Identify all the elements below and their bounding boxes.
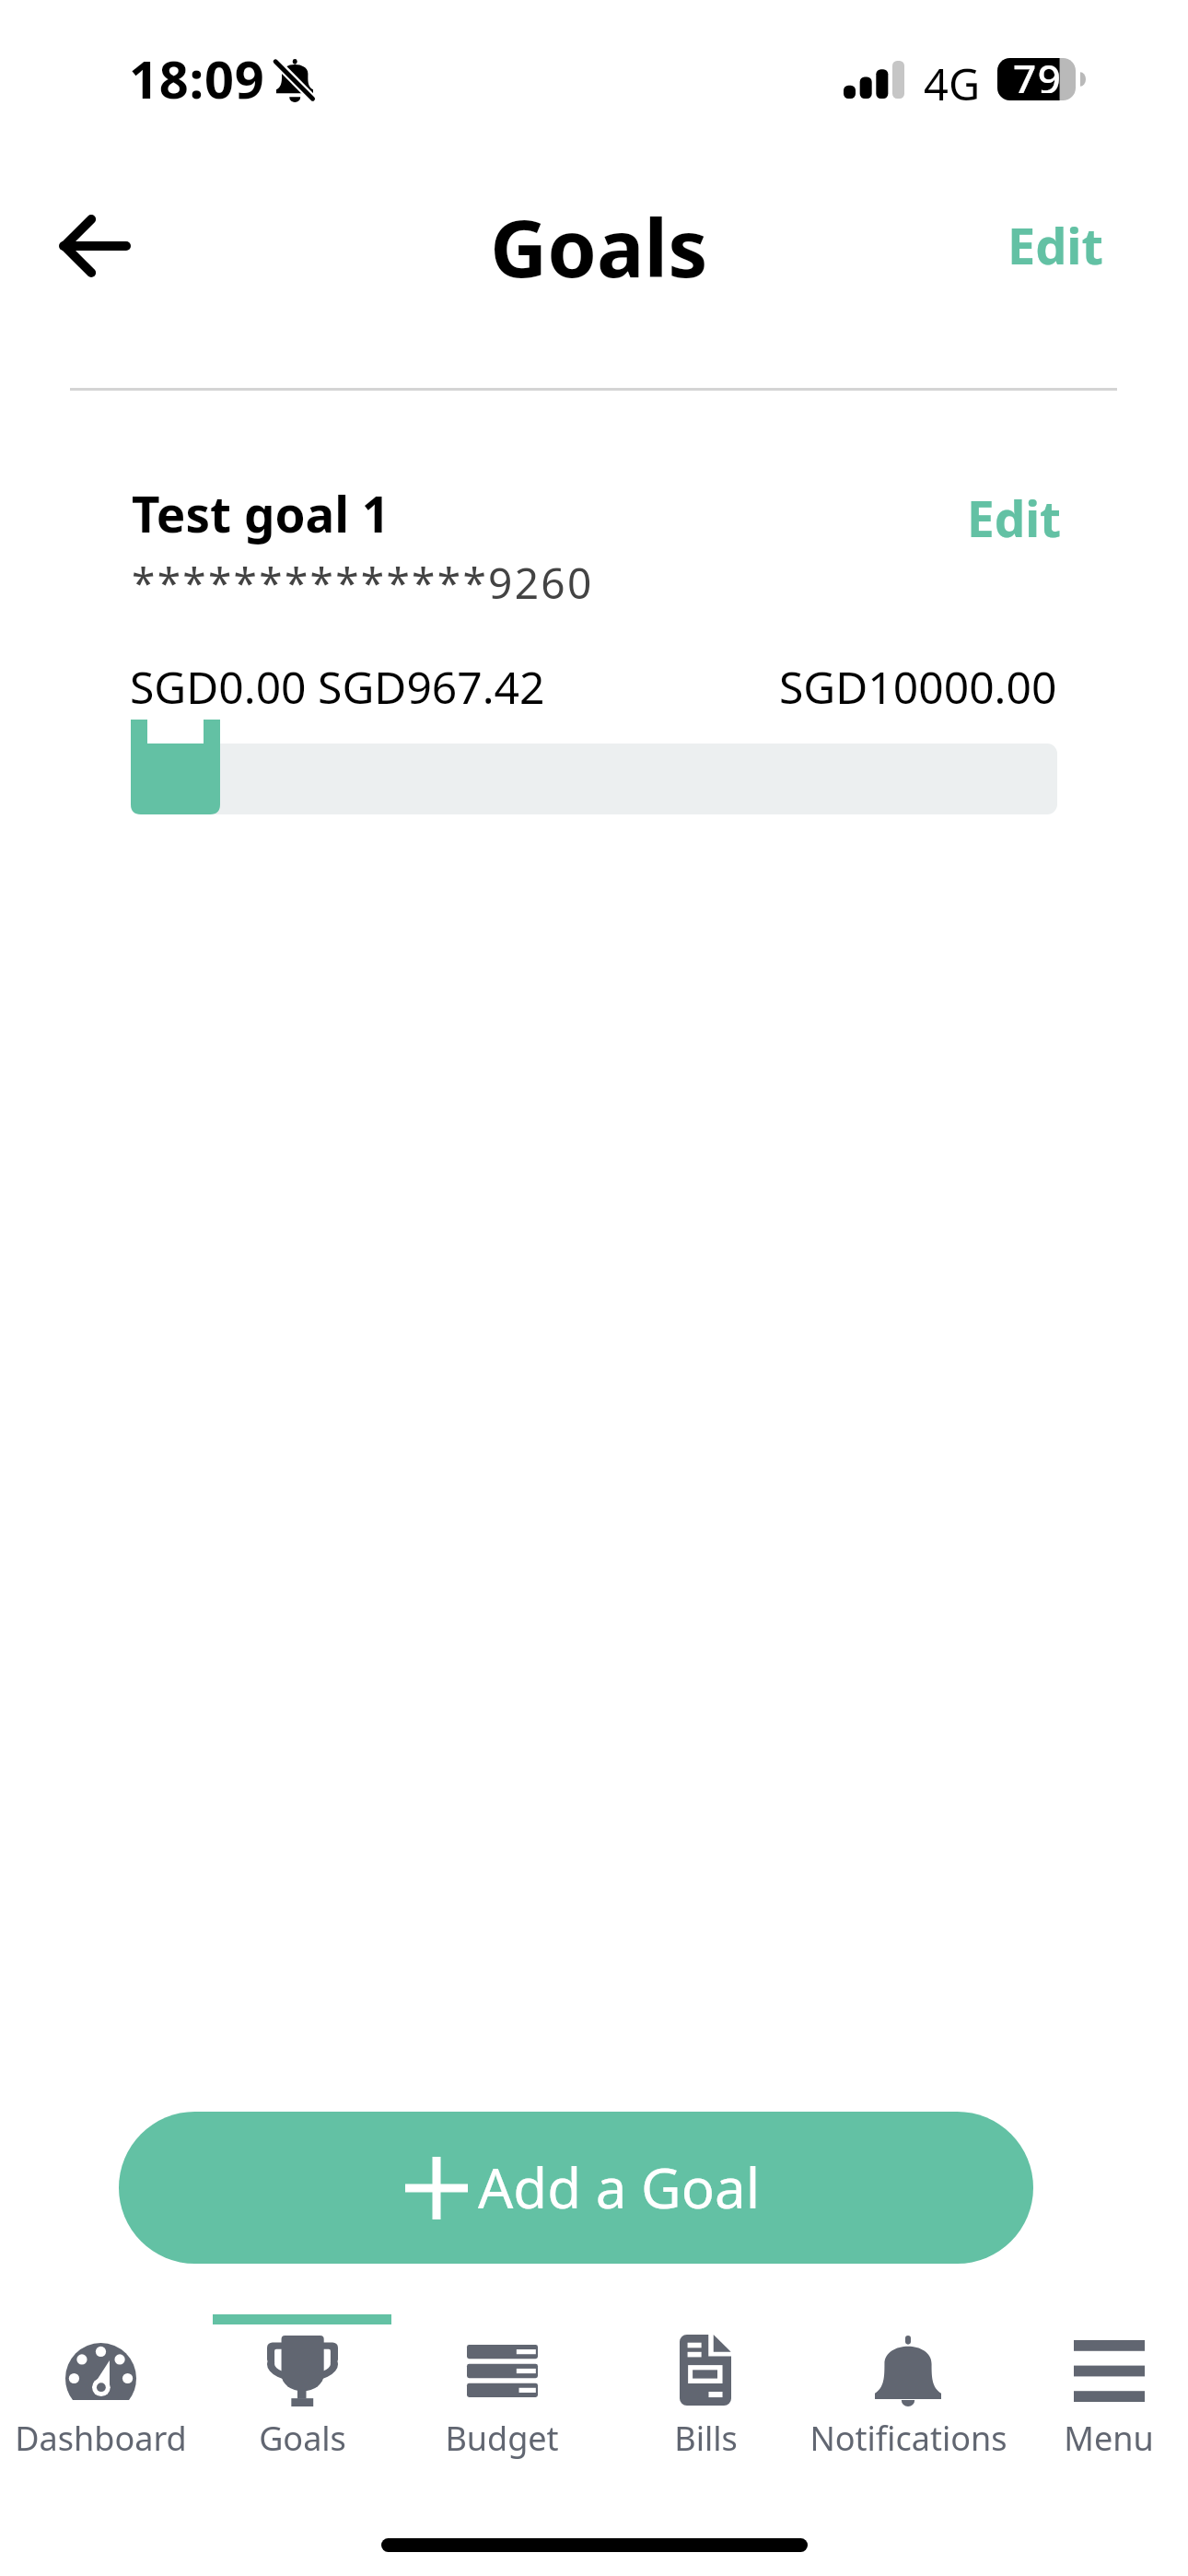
button[interactable]: Goals <box>204 2308 401 2474</box>
staticText: Menu <box>1064 2416 1154 2461</box>
button[interactable]: Edit <box>967 483 1068 553</box>
staticText: Edit <box>1007 211 1103 279</box>
button[interactable]: Budget <box>403 2308 600 2474</box>
staticText: Goals <box>490 193 708 300</box>
staticText: Edit <box>967 485 1062 551</box>
staticText: Test goal 1 <box>132 480 390 546</box>
staticText: Goals <box>259 2416 346 2461</box>
button[interactable]: Menu <box>1010 2308 1188 2474</box>
button[interactable]: Edit <box>1007 194 1127 296</box>
staticText: Dashboard <box>15 2416 187 2461</box>
staticText: 79 <box>1013 51 1063 93</box>
staticText: 4G <box>924 54 981 113</box>
button[interactable]: Bills <box>607 2308 804 2474</box>
button[interactable]: Dashboard <box>2 2308 199 2474</box>
staticText: Bills <box>674 2416 738 2461</box>
staticText: Notifications <box>809 2416 1007 2461</box>
staticText: Add a Goal <box>478 2149 761 2225</box>
staticText: SGD10000.00 <box>779 657 1057 717</box>
button[interactable]: Back <box>31 191 158 301</box>
staticText: 18:09 <box>129 43 265 113</box>
button[interactable]: Notifications <box>809 2308 1007 2474</box>
staticText: Budget <box>445 2416 559 2461</box>
staticText: SGD0.00 SGD967.42 <box>130 657 545 717</box>
staticText: **************9260 <box>132 554 594 612</box>
button[interactable]: Add a Goal <box>119 2112 1033 2264</box>
